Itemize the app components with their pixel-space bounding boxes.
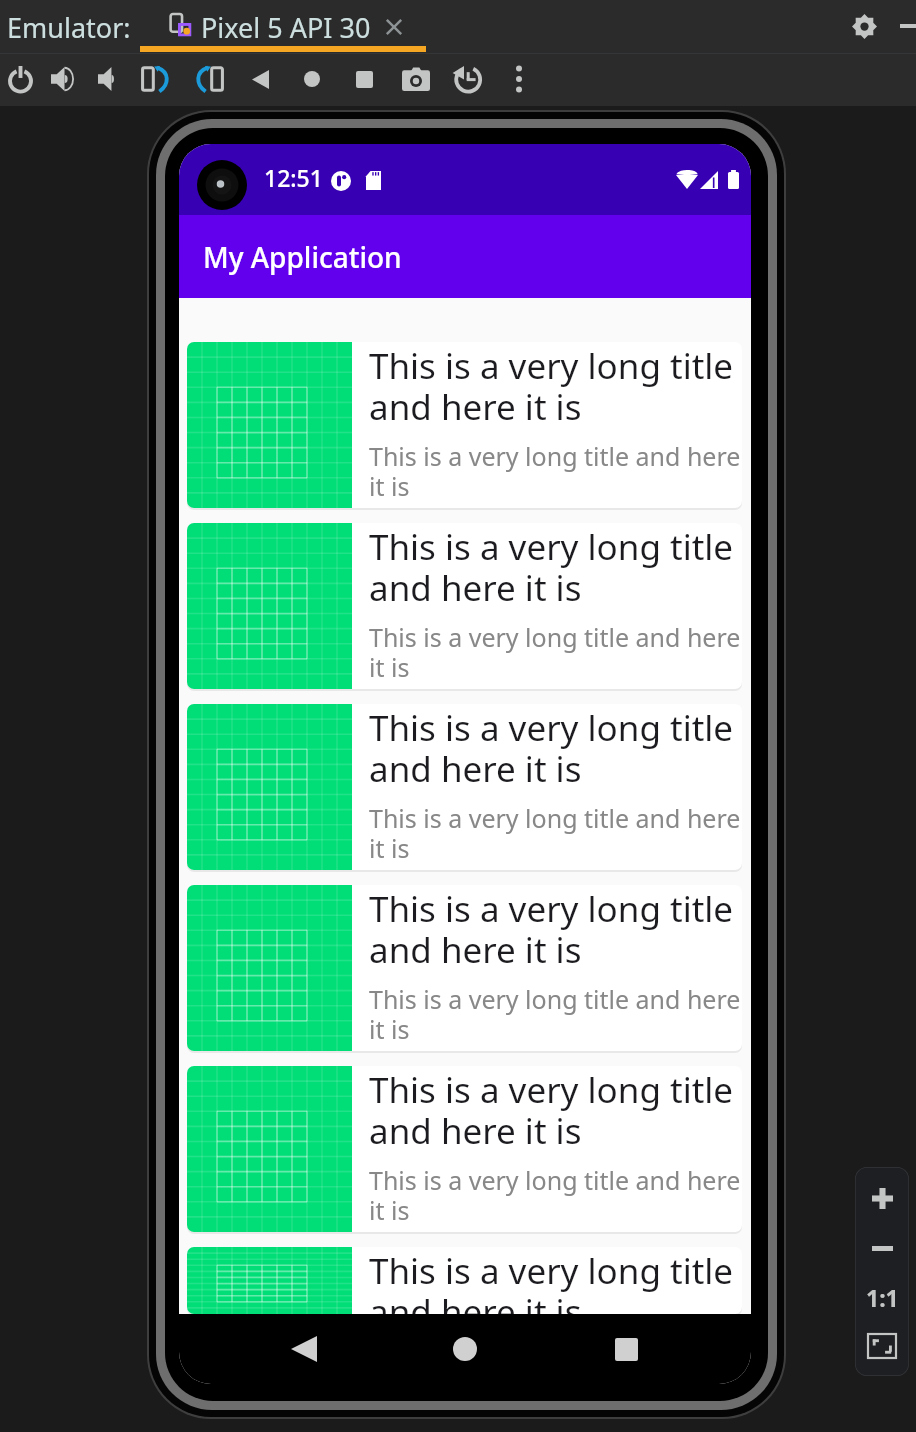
staticText: This is a very long title and here it is bbox=[369, 620, 742, 685]
staticText: Pixel 5 API 30 bbox=[201, 9, 371, 46]
button[interactable]: This is a very long title and here it is bbox=[187, 523, 742, 689]
staticText: This is a very long title and here it is bbox=[369, 523, 742, 611]
staticText: This is a very long title and here it is bbox=[369, 1163, 742, 1228]
staticText: 12:51 bbox=[264, 162, 323, 193]
button[interactable]: Power bbox=[0, 58, 41, 100]
button[interactable]: Settings bbox=[843, 5, 885, 47]
button[interactable]: Overview bbox=[343, 58, 385, 100]
button[interactable]: Home bbox=[291, 58, 333, 100]
staticText: This is a very long title and here it is bbox=[369, 704, 742, 792]
staticText: This is a very long title and here it is bbox=[369, 1066, 742, 1154]
button[interactable]: Zoom to fit bbox=[855, 1324, 909, 1368]
button[interactable]: This is a very long title and here it is bbox=[187, 1247, 742, 1314]
button[interactable]: Recents bbox=[590, 1314, 662, 1384]
staticText: This is a very long title and here it is bbox=[369, 1247, 742, 1314]
staticText: 1:1 bbox=[866, 1282, 899, 1313]
staticText: This is a very long title and here it is bbox=[369, 342, 742, 430]
button[interactable]: Volume up bbox=[43, 58, 85, 100]
button[interactable]: Volume down bbox=[87, 58, 129, 100]
button[interactable]: Pixel 5 API 30 bbox=[140, 0, 426, 52]
staticText: This is a very long title and here it is bbox=[369, 885, 742, 973]
button[interactable]: Actual size bbox=[855, 1275, 909, 1319]
staticText: My Application bbox=[203, 238, 402, 276]
button[interactable]: More options bbox=[498, 58, 540, 100]
button[interactable]: Rotate right bbox=[187, 58, 229, 100]
button[interactable]: Rotate left bbox=[135, 58, 177, 100]
staticText: This is a very long title and here it is bbox=[369, 982, 742, 1047]
button[interactable]: Zoom in bbox=[855, 1176, 909, 1220]
button[interactable]: Screenshot bbox=[395, 58, 437, 100]
button[interactable]: Record bbox=[446, 58, 488, 100]
button[interactable]: Minimize bbox=[890, 5, 916, 47]
button[interactable]: My Application bbox=[179, 215, 751, 298]
button[interactable]: Zoom out bbox=[855, 1226, 909, 1270]
button[interactable]: Back bbox=[239, 58, 281, 100]
staticText: Emulator: bbox=[7, 9, 131, 46]
button[interactable]: Back bbox=[268, 1314, 340, 1384]
staticText: This is a very long title and here it is bbox=[369, 801, 742, 866]
button[interactable]: This is a very long title and here it is bbox=[187, 342, 742, 508]
button[interactable]: This is a very long title and here it is bbox=[187, 1066, 742, 1232]
staticText: This is a very long title and here it is bbox=[369, 439, 742, 504]
button[interactable]: This is a very long title and here it is bbox=[187, 704, 742, 870]
button[interactable]: Home bbox=[429, 1314, 501, 1384]
button[interactable]: This is a very long title and here it is bbox=[187, 885, 742, 1051]
